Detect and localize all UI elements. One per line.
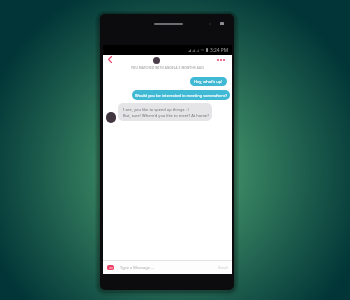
staticText: Send (218, 265, 228, 270)
staticText: But, sure! Where'd you like to meet? At … (123, 113, 209, 118)
button[interactable]: I see, you like to speed up things : ) (118, 103, 212, 121)
button[interactable]: More options (214, 55, 228, 64)
button[interactable]: Send (218, 265, 228, 270)
button[interactable]: Back (105, 54, 114, 65)
staticText: Would you be interested in meeting somew… (135, 93, 227, 98)
button[interactable]: Hey, what's up! (190, 77, 227, 86)
staticText: Type a Message ... (120, 265, 155, 270)
staticText: YOU MATCHED WITH ANGELA 3 MONTHS AGO (131, 66, 204, 70)
staticText: 3:24 PM (210, 47, 229, 54)
staticText: Hey, what's up! (194, 79, 223, 84)
button[interactable]: Send GIF (107, 265, 114, 270)
staticText: m (201, 48, 204, 52)
staticText: I see, you like to speed up things : ) (123, 107, 189, 112)
button[interactable]: Would you be interested in meeting somew… (132, 90, 230, 100)
